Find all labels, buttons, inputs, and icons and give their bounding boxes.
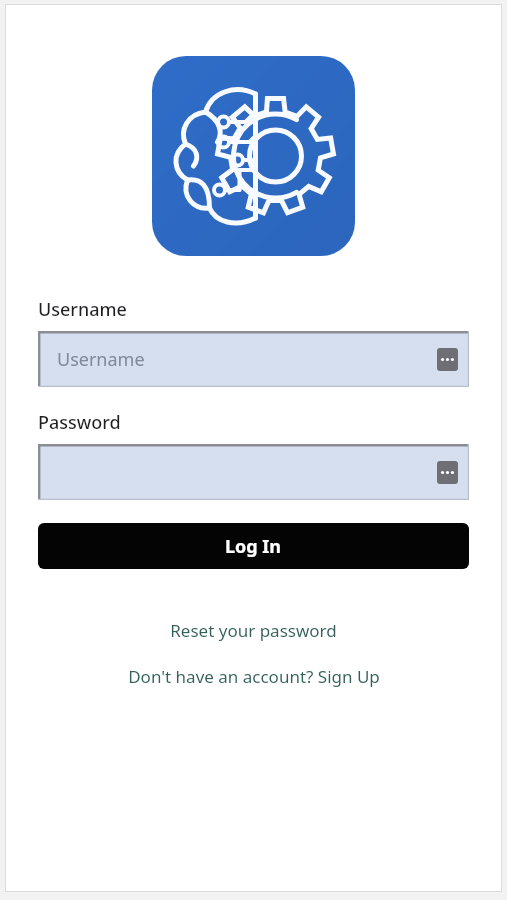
- button[interactable]: Log In: [38, 523, 469, 569]
- staticText: Password: [38, 410, 121, 435]
- staticText: Username: [57, 347, 145, 372]
- staticText: Don't have an account? Sign Up: [128, 665, 380, 688]
- button[interactable]: Username field: [38, 331, 469, 387]
- staticText: Log In: [225, 534, 282, 559]
- other: App logo: [152, 56, 355, 256]
- staticText: Reset your password: [170, 619, 337, 642]
- button[interactable]: Reset your password: [5, 619, 502, 642]
- staticText: Username: [38, 297, 127, 322]
- button[interactable]: More options: [437, 461, 458, 484]
- button[interactable]: More options: [437, 348, 458, 371]
- button[interactable]: Don't have an account? Sign Up: [5, 665, 502, 688]
- button[interactable]: Password field: [38, 444, 469, 500]
